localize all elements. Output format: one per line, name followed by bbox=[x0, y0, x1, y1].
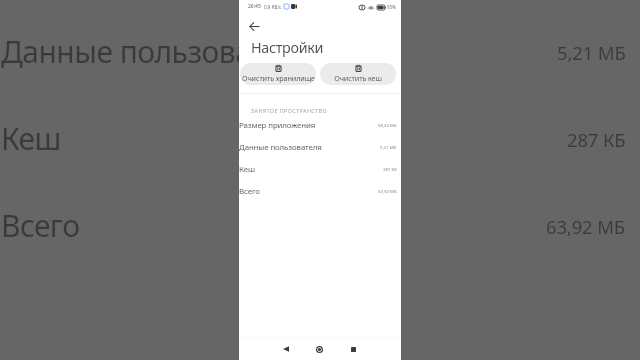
staticText: 287 КБ bbox=[567, 127, 626, 152]
staticText: 93% bbox=[387, 4, 396, 10]
button[interactable]: Данные пользователя bbox=[239, 136, 401, 158]
staticText: Кеш bbox=[1, 118, 61, 159]
button[interactable]: Очистить хранилище bbox=[240, 63, 316, 85]
button[interactable]: Назад bbox=[247, 19, 262, 34]
staticText: Очистить хранилище bbox=[242, 73, 315, 83]
staticText: Настройки bbox=[251, 38, 324, 57]
staticText: Данные пользова bbox=[1, 31, 252, 72]
staticText: Очистить кеш bbox=[334, 73, 382, 83]
button[interactable]: Назад bbox=[277, 340, 295, 358]
button[interactable]: Домой bbox=[310, 340, 328, 358]
button[interactable]: Всего bbox=[239, 180, 401, 202]
staticText: Всего bbox=[239, 186, 260, 197]
staticText: 20:45 bbox=[248, 3, 261, 10]
staticText: 5,21 МБ bbox=[380, 144, 397, 150]
button[interactable]: Очистить кеш bbox=[320, 63, 396, 85]
staticText: 63,92 МБ bbox=[378, 188, 397, 194]
button[interactable]: Недавние bbox=[344, 340, 362, 358]
button[interactable]: Кеш bbox=[239, 158, 401, 180]
staticText: Размер приложения bbox=[239, 120, 316, 131]
staticText: 63,92 МБ bbox=[546, 214, 626, 239]
staticText: 0,9 КБ/с bbox=[264, 4, 282, 10]
staticText: Кеш bbox=[239, 164, 255, 175]
staticText: Всего bbox=[1, 205, 80, 246]
staticText: 287 КБ bbox=[383, 166, 397, 172]
staticText: 58,43 МБ bbox=[378, 122, 397, 128]
staticText: Данные пользователя bbox=[239, 142, 322, 153]
button[interactable]: Размер приложения bbox=[239, 114, 401, 136]
staticText: ЗАНЯТОЕ ПРОСТРАНСТВО bbox=[251, 107, 328, 114]
staticText: 5,21 МБ bbox=[557, 40, 626, 65]
